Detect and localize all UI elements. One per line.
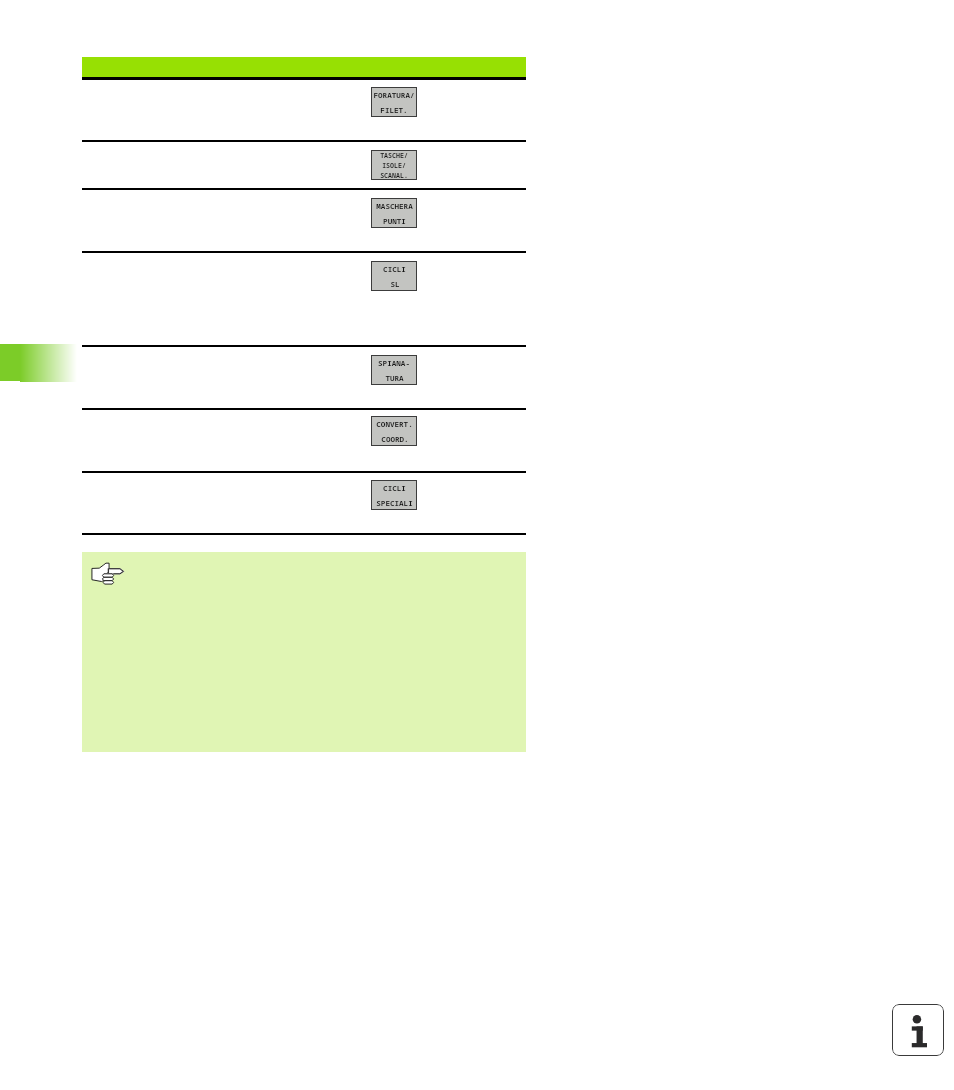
staticText: SCANAL.: [380, 171, 408, 180]
staticText: CICLI: [383, 264, 406, 274]
staticText: SPECIALI: [376, 498, 413, 508]
staticText: MASCHERA: [376, 201, 413, 211]
staticText: ISOLE/: [382, 161, 406, 170]
staticText: PUNTI: [383, 216, 406, 226]
staticText: SPIANA-: [378, 358, 410, 368]
staticText: FILET.: [380, 105, 408, 115]
staticText: CONVERT.: [376, 419, 413, 429]
button[interactable]: SPIANA-: [371, 355, 417, 385]
button[interactable]: MASCHERA: [371, 198, 417, 228]
staticText: FORATURA/: [373, 90, 415, 100]
staticText: COORD.: [381, 434, 409, 444]
button[interactable]: TASCHE/: [371, 150, 417, 180]
button[interactable]: CICLI: [371, 480, 417, 510]
staticText: TASCHE/: [380, 151, 408, 160]
button[interactable]: CONVERT.: [371, 416, 417, 446]
staticText: CICLI: [383, 483, 406, 493]
button[interactable]: Information: [892, 1004, 944, 1056]
button[interactable]: FORATURA/: [371, 87, 417, 117]
staticText: TURA: [385, 373, 404, 383]
button[interactable]: CICLI: [371, 261, 417, 291]
staticText: SL: [390, 279, 400, 289]
